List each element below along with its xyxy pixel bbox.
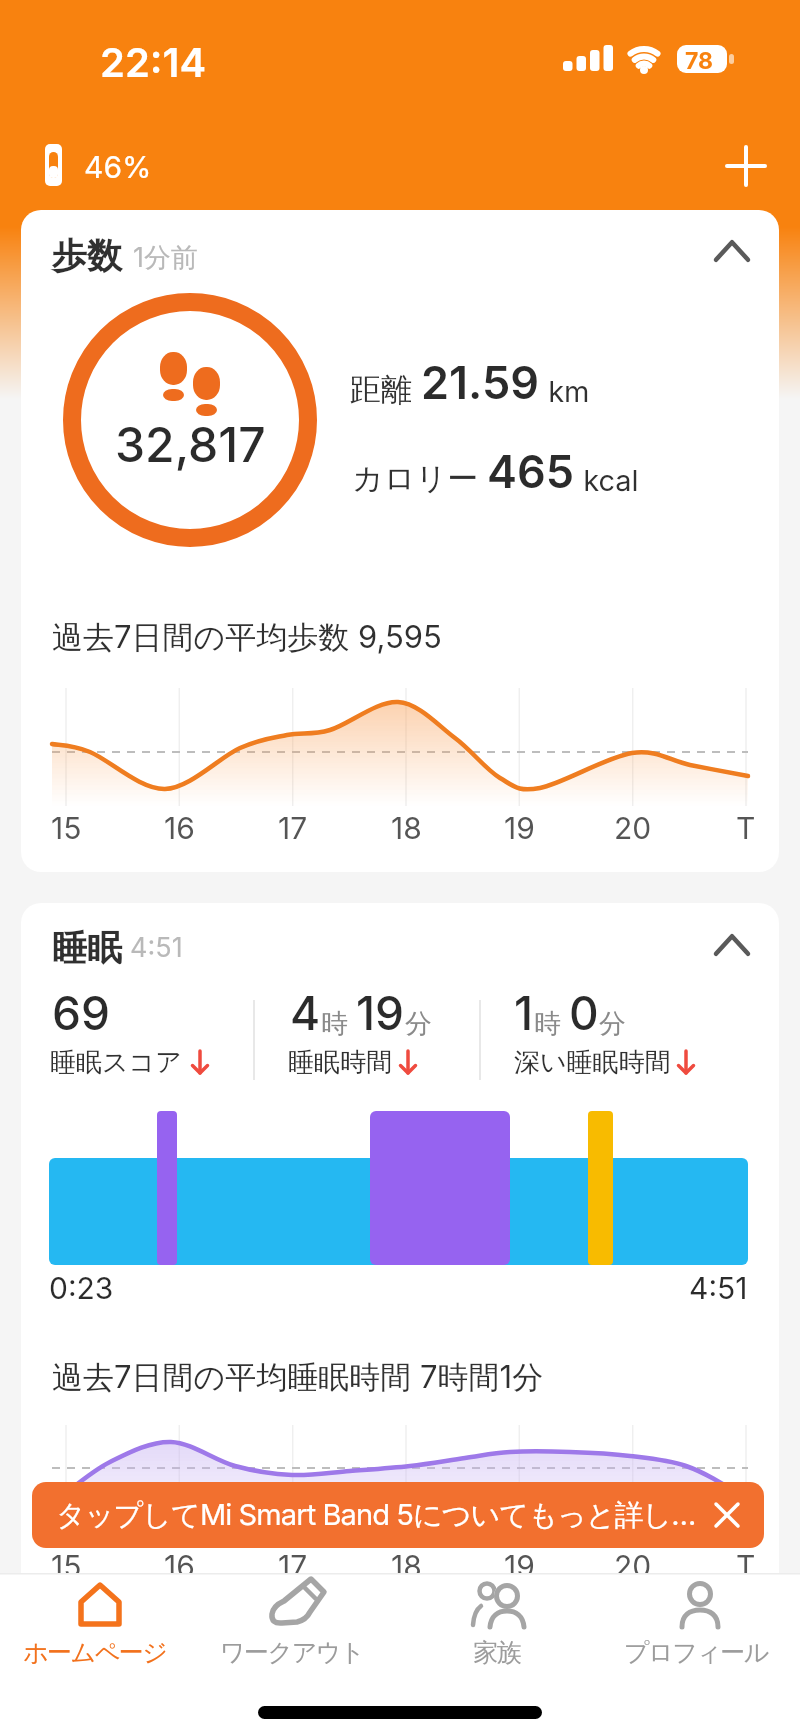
- staticText: 20: [614, 1548, 652, 1584]
- staticText: 4:51: [130, 931, 183, 964]
- button[interactable]: タップしてMi Smart Band 5についてもっと詳し…: [32, 1482, 764, 1548]
- staticText: T: [736, 1548, 756, 1584]
- staticText: カロリー: [352, 459, 487, 498]
- staticText: 19: [356, 985, 405, 1041]
- staticText: 0: [569, 985, 599, 1041]
- staticText: 0:23: [49, 1270, 114, 1306]
- staticText: 16: [164, 810, 195, 846]
- button[interactable]: ホームページ: [0, 1632, 205, 1672]
- staticText: ホームページ: [23, 1637, 167, 1668]
- staticText: 家族: [474, 1637, 521, 1668]
- staticText: 深い睡眠時間: [514, 1046, 671, 1079]
- staticText: 32,817: [115, 415, 266, 473]
- staticText: 20: [614, 810, 652, 846]
- staticText: 睡眠時間: [288, 1046, 392, 1079]
- staticText: 19: [504, 1548, 535, 1584]
- staticText: 睡眠: [52, 926, 122, 970]
- button[interactable]: [21, 210, 779, 872]
- staticText: km: [540, 374, 590, 409]
- staticText: ワークアウト: [220, 1637, 364, 1668]
- staticText: 時: [321, 1007, 356, 1041]
- button[interactable]: ワークアウト: [182, 1632, 402, 1672]
- staticText: 1: [514, 985, 534, 1041]
- staticText: 69: [52, 985, 110, 1041]
- staticText: 歩数: [52, 234, 122, 278]
- staticText: 22:14: [100, 38, 207, 86]
- button[interactable]: 家族: [387, 1632, 607, 1672]
- staticText: 時: [534, 1007, 569, 1041]
- staticText: 17: [278, 1548, 308, 1584]
- staticText: T: [736, 810, 756, 846]
- staticText: 1分前: [133, 241, 198, 275]
- button[interactable]: [21, 903, 779, 1603]
- staticText: 18: [391, 810, 422, 846]
- staticText: 19: [504, 810, 535, 846]
- staticText: 465: [487, 444, 575, 498]
- staticText: 17: [278, 810, 308, 846]
- staticText: タップしてMi Smart Band 5についてもっと詳し…: [56, 1497, 696, 1534]
- staticText: 距離: [350, 370, 421, 409]
- staticText: 分: [405, 1007, 432, 1041]
- staticText: 過去7日間の平均睡眠時間 7時間1分: [52, 1358, 544, 1397]
- staticText: 16: [164, 1548, 195, 1584]
- staticText: 過去7日間の平均歩数 9,595: [52, 618, 442, 657]
- staticText: 78: [685, 47, 714, 75]
- button[interactable]: プロフィール: [586, 1632, 800, 1672]
- staticText: 睡眠スコア: [50, 1046, 182, 1079]
- staticText: 21.59: [421, 355, 540, 409]
- staticText: kcal: [575, 463, 639, 498]
- staticText: 分: [599, 1007, 626, 1041]
- staticText: 46%: [84, 149, 152, 185]
- staticText: 4:51: [689, 1270, 748, 1306]
- staticText: 4: [290, 985, 321, 1041]
- staticText: 18: [391, 1548, 422, 1584]
- staticText: 15: [51, 810, 82, 846]
- staticText: 15: [51, 1548, 82, 1584]
- staticText: プロフィール: [624, 1637, 768, 1668]
